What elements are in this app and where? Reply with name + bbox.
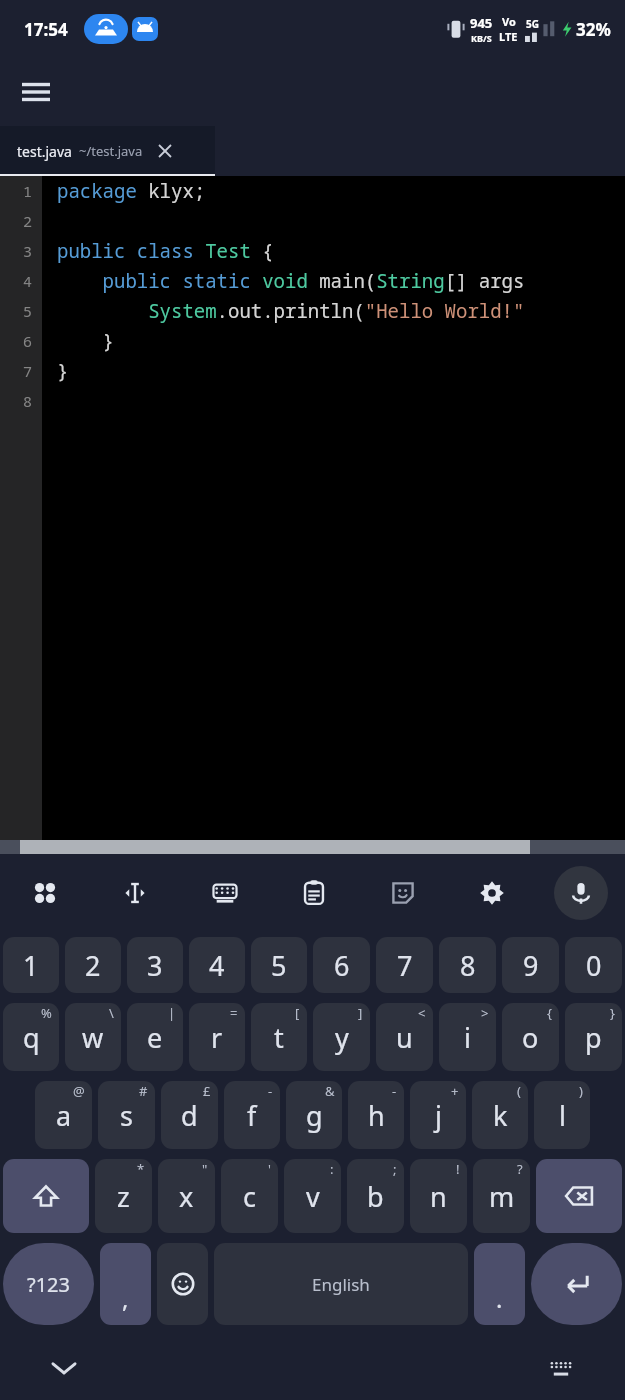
button[interactable]: o [502,1003,559,1071]
button[interactable]: w [65,1003,121,1071]
button[interactable]: Settings [447,854,536,932]
button[interactable]: b [347,1159,404,1233]
button[interactable]: 5 [251,937,307,993]
button[interactable]: 7 [376,937,433,993]
button[interactable]: n [410,1159,467,1233]
button[interactable]: r [189,1003,245,1071]
button[interactable]: u [376,1003,433,1071]
button[interactable]: m [473,1159,530,1233]
button[interactable]: p [565,1003,622,1071]
button[interactable]: Close tab [154,140,176,162]
staticText: public static void main(String[] args [57,268,525,294]
staticText: £ [203,1082,211,1100]
button[interactable]: h [348,1081,404,1149]
button[interactable]: j [410,1081,466,1149]
staticText: | [168,1004,176,1022]
button[interactable]: c [221,1159,278,1233]
button[interactable]: Voice input [554,866,608,920]
staticText: : [330,1160,334,1178]
staticText: p [585,1019,602,1056]
button[interactable]: g [286,1081,342,1149]
staticText: # [139,1082,148,1100]
staticText: 6 [334,947,350,984]
button[interactable]: Hide keyboard [42,1346,86,1390]
staticText: } [57,358,69,384]
button[interactable]: Shift [3,1159,89,1233]
staticText: 2 [23,211,33,231]
staticText: ~/test.java [79,142,143,160]
button[interactable]: Clipboard [269,854,358,932]
staticText: 8 [460,947,476,984]
staticText: u [396,1019,413,1056]
staticText: ' [268,1160,271,1178]
staticText: l [559,1097,566,1134]
staticText: y [335,1019,349,1056]
staticText: ] [358,1004,363,1022]
button[interactable]: v [284,1159,341,1233]
staticText: n [430,1178,447,1215]
staticText: ?123 [27,1271,70,1298]
button[interactable]: Stickers [358,854,447,932]
staticText: 5 [271,947,287,984]
button[interactable]: 3 [127,937,183,993]
button[interactable]: Open navigation menu [12,68,60,116]
button[interactable]: l [534,1081,590,1149]
button[interactable]: 6 [313,937,370,993]
staticText: > [481,1004,489,1022]
staticText: v [306,1178,320,1215]
button[interactable]: Emoji [157,1243,208,1325]
button[interactable]: d [161,1081,218,1149]
button[interactable]: k [472,1081,528,1149]
staticText: 3 [147,947,163,984]
button[interactable]: 9 [502,937,559,993]
button[interactable]: test.java [0,126,215,176]
staticText: Vo [502,14,516,29]
button[interactable]: Switch keyboard [539,1346,583,1390]
button[interactable]: e [127,1003,183,1071]
button[interactable]: English [214,1243,468,1325]
staticText: 3 [23,241,33,261]
staticText: , [122,1282,129,1315]
staticText: q [23,1019,40,1056]
staticText: 0 [586,947,602,984]
staticText: " [202,1160,208,1178]
button[interactable]: q [3,1003,59,1071]
staticText: < [418,1004,426,1022]
button[interactable]: 2 [65,937,121,993]
button[interactable]: t [251,1003,307,1071]
button[interactable]: 1 [3,937,59,993]
button[interactable]: 0 [565,937,622,993]
staticText: 6 [23,331,33,351]
button[interactable]: x [158,1159,215,1233]
staticText: ) [579,1082,583,1100]
button[interactable]: i [439,1003,496,1071]
button[interactable]: Toolbar menu [0,854,90,932]
button[interactable]: s [98,1081,155,1149]
button[interactable]: z [95,1159,152,1233]
button[interactable]: , [100,1243,151,1325]
button[interactable]: y [313,1003,370,1071]
staticText: } [57,328,115,354]
button[interactable]: Backspace [536,1159,622,1233]
button[interactable]: f [224,1081,280,1149]
button[interactable]: a [35,1081,92,1149]
staticText: ! [456,1160,460,1178]
staticText: ? [517,1160,523,1178]
staticText: f [247,1097,257,1134]
button[interactable]: Text cursor control [90,854,180,932]
staticText: 32% [576,18,611,41]
staticText: b [367,1178,384,1215]
button[interactable]: Enter [531,1243,622,1325]
staticText: d [181,1097,198,1134]
staticText: 1 [23,947,39,984]
button[interactable]: 8 [439,937,496,993]
staticText: \ [109,1004,114,1022]
button[interactable]: ?123 [3,1243,94,1325]
button[interactable]: . [474,1243,525,1325]
staticText: r [211,1019,223,1056]
button[interactable]: 4 [189,937,245,993]
button[interactable]: Keyboard settings [180,854,269,932]
staticText: * [137,1160,145,1178]
staticText: x [179,1178,194,1215]
staticText: 7 [23,361,33,381]
